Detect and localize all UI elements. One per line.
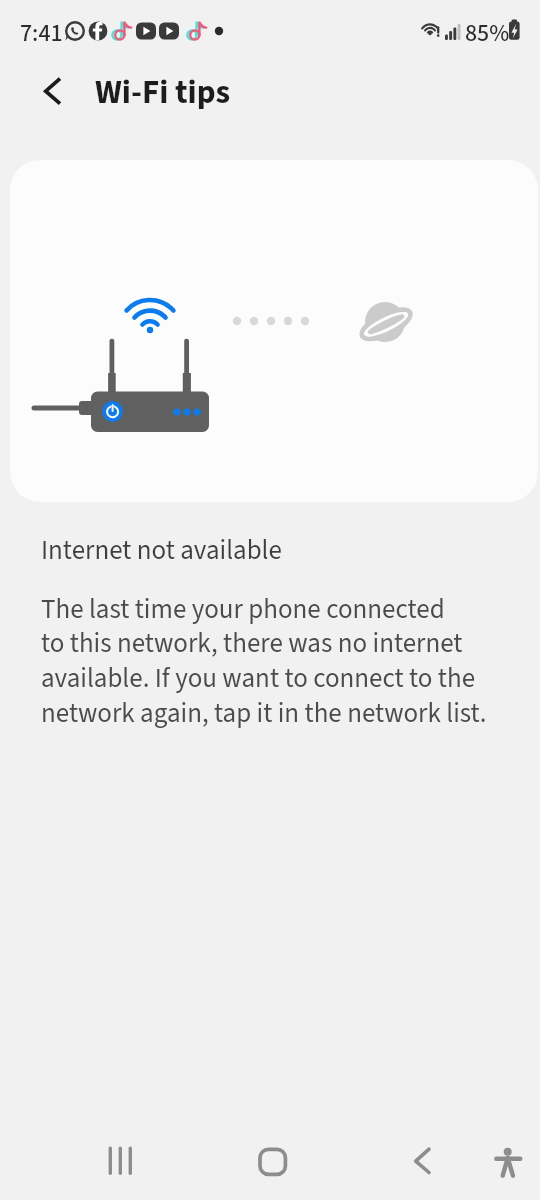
staticText: Wi-Fi tips bbox=[95, 69, 231, 116]
button[interactable]: Back bbox=[390, 1126, 460, 1196]
staticText: 7:41 bbox=[20, 16, 63, 50]
staticText: Internet not available bbox=[41, 531, 282, 569]
button[interactable]: Home bbox=[237, 1126, 307, 1196]
staticText: The last time your phone connected to th… bbox=[41, 590, 487, 733]
staticText: 85% bbox=[465, 16, 510, 50]
button[interactable]: Accessibility bbox=[473, 1126, 540, 1196]
button[interactable]: Navigate up bbox=[26, 63, 74, 111]
button[interactable]: Recent apps bbox=[85, 1126, 155, 1196]
